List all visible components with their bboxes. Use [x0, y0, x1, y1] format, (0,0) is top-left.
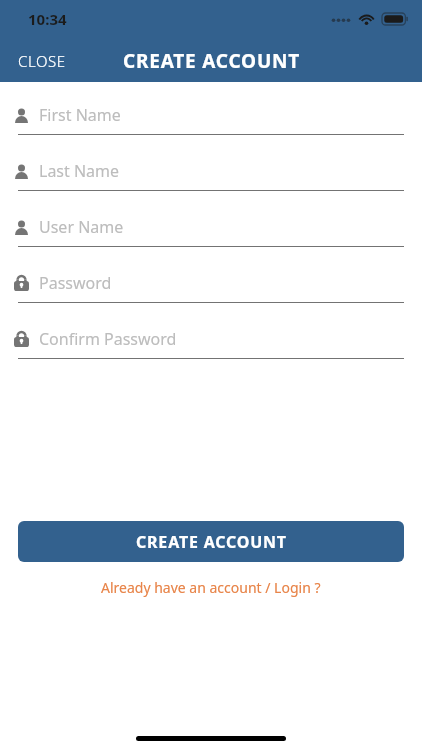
button[interactable]: CREATE ACCOUNT: [18, 521, 404, 562]
button[interactable]: Password: [0, 264, 422, 320]
button[interactable]: First Name: [0, 96, 422, 152]
button[interactable]: Last Name: [0, 152, 422, 208]
staticText: Already have an account / Login ?: [101, 578, 321, 597]
staticText: Last Name: [39, 160, 120, 182]
button[interactable]: Already have an account / Login ?: [0, 573, 422, 602]
staticText: CREATE ACCOUNT: [123, 48, 301, 74]
button[interactable]: User Name: [0, 208, 422, 264]
staticText: First Name: [39, 104, 121, 126]
staticText: Confirm Password: [39, 328, 177, 350]
staticText: CLOSE: [18, 51, 66, 71]
staticText: CREATE ACCOUNT: [136, 531, 287, 553]
staticText: 10:34: [28, 9, 67, 29]
button[interactable]: Confirm Password: [0, 320, 422, 376]
staticText: Password: [39, 272, 112, 294]
button[interactable]: CLOSE: [0, 45, 78, 77]
staticText: User Name: [39, 216, 124, 238]
